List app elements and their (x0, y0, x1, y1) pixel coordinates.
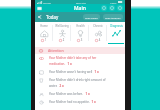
button[interactable]: Search (101, 5, 107, 11)
staticText: Your Mother was before. (49, 92, 84, 96)
button[interactable]: Attention (35, 47, 125, 54)
staticText: 100% (110, 1, 117, 4)
button[interactable]: Your Mother had no appetite. (35, 98, 125, 106)
staticText: medication. (49, 62, 66, 66)
staticText: 3 (80, 38, 83, 42)
button[interactable]: Profile (117, 5, 123, 11)
button[interactable]: Your Mother didn't take any of her (35, 54, 125, 68)
button[interactable]: Menu (36, 5, 43, 12)
button[interactable]: Your Mother was before. (35, 90, 125, 98)
button[interactable]: Chronic actions (89, 22, 107, 44)
staticText: 2 x (58, 84, 64, 88)
staticText: 1 x (90, 100, 96, 104)
staticText: THIS MONTH (105, 16, 121, 19)
staticText: THIS WEEK (85, 16, 98, 19)
button[interactable]: THIS MONTH (103, 14, 123, 20)
button[interactable]: THIS WEEK (83, 14, 100, 20)
staticText: Your Mother didn't drink right amount of (49, 78, 106, 82)
staticText: 1 x (84, 92, 90, 96)
button[interactable]: Well-being (53, 22, 71, 44)
staticText: 1 (44, 38, 47, 42)
staticText: 9:41 AM (76, 1, 86, 4)
staticText: Diagnosis (110, 24, 123, 28)
staticText: 1 x (66, 62, 72, 66)
button[interactable]: Your Mother didn't drink right amount of (35, 76, 125, 90)
staticText: 4 (98, 38, 101, 42)
staticText: Attention (48, 48, 64, 53)
button[interactable]: Back (35, 13, 43, 21)
staticText: Your Mother wasn't having well (49, 70, 93, 74)
button[interactable]: Home (35, 22, 53, 44)
staticText: Carrier (43, 1, 52, 4)
button[interactable]: Health (71, 22, 89, 44)
staticText: water. (49, 84, 58, 88)
staticText: 1 x (93, 70, 99, 74)
button[interactable]: Diagnosis (107, 22, 125, 44)
staticText: Your Mother didn't take any of her (49, 56, 97, 60)
button[interactable]: Notifications (109, 5, 115, 11)
staticText: Home (40, 24, 48, 28)
button[interactable]: Your Mother wasn't having well (35, 68, 125, 76)
staticText: 2 (62, 38, 65, 42)
staticText: Health (76, 24, 85, 28)
staticText: Today (46, 14, 59, 20)
staticText: Your Mother had no appetite. (49, 100, 90, 104)
staticText: Chronic actions (89, 24, 107, 28)
staticText: Main (74, 5, 86, 12)
staticText: Well-being (55, 24, 69, 28)
